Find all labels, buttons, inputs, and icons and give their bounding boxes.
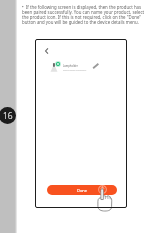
staticText: • If the following screen is displayed, … [22,4,146,25]
staticText: Lampholder [63,64,78,68]
staticText: Done [77,188,88,193]
staticText: 16 [3,110,13,122]
button[interactable]: Edit [92,62,100,70]
staticText: device added successfully [63,69,87,72]
button[interactable]: Back [41,45,53,57]
button[interactable]: Done [47,185,117,195]
button[interactable]: Lampholder [39,57,123,77]
